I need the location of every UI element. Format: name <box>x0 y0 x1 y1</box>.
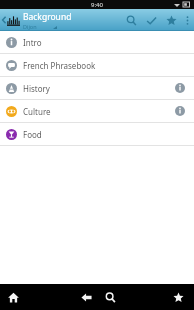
button[interactable]: Bookmark <box>161 9 181 31</box>
button[interactable]: More info about Culture <box>170 101 190 121</box>
button[interactable]: French Phrasebook <box>0 54 194 76</box>
staticText: Intro <box>23 37 170 48</box>
button[interactable]: Intro <box>0 31 194 53</box>
button[interactable]: Favorites <box>167 286 189 308</box>
button[interactable]: Search <box>99 286 121 308</box>
staticText: Dijon <box>23 23 37 30</box>
button[interactable]: Mark as read <box>141 9 161 31</box>
button[interactable]: Back <box>75 286 97 308</box>
button[interactable]: More options <box>181 9 194 31</box>
staticText: 9:40 <box>91 1 103 9</box>
staticText: Background <box>23 11 72 23</box>
button[interactable]: Navigate up, Background, Dijon <box>0 9 105 31</box>
button[interactable]: History <box>0 77 194 99</box>
button[interactable]: Culture <box>0 100 194 122</box>
staticText: French Phrasebook <box>23 60 170 71</box>
staticText: Culture <box>23 106 170 117</box>
button[interactable]: Search <box>121 9 141 31</box>
staticText: History <box>23 83 170 94</box>
staticText: Food <box>23 129 170 140</box>
button[interactable]: Food <box>0 123 194 145</box>
button[interactable]: Home <box>2 286 24 308</box>
button[interactable]: More info about History <box>170 78 190 98</box>
